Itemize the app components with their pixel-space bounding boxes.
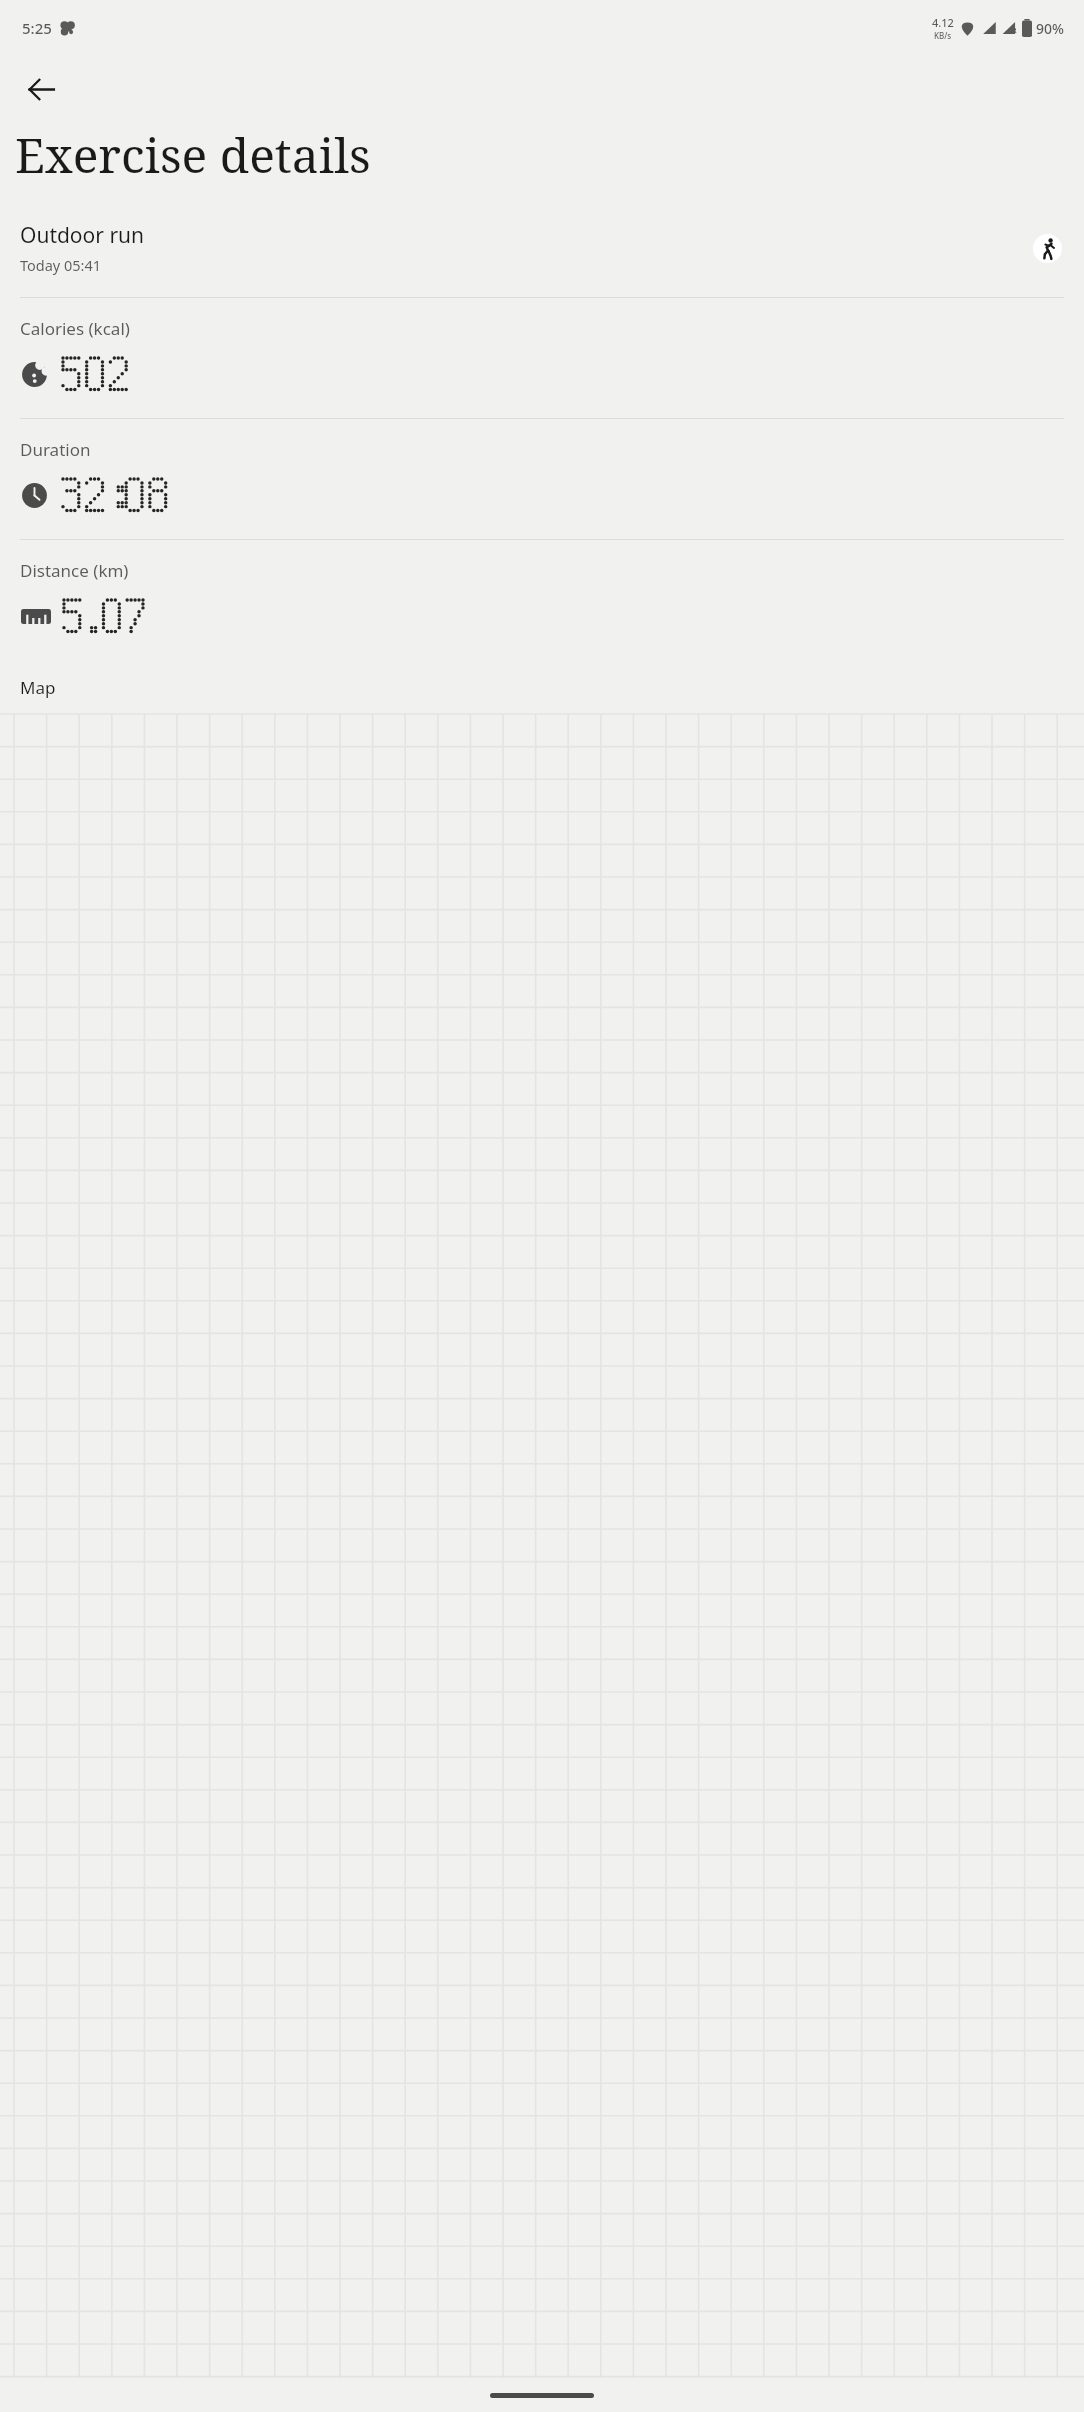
button[interactable]: Back — [14, 62, 68, 116]
staticText: Duration — [20, 438, 91, 461]
staticText: R — [1012, 26, 1017, 36]
other: Distance — [21, 603, 51, 630]
other: Calories — [21, 361, 48, 388]
button[interactable]: Map — [0, 714, 1084, 2378]
staticText: Calories (kcal) — [20, 317, 130, 340]
other: Duration — [21, 482, 48, 509]
staticText: KB/s — [934, 30, 952, 41]
staticText: 90% — [1036, 19, 1064, 38]
staticText: Map — [20, 676, 56, 699]
staticText: Exercise details — [15, 122, 371, 187]
button[interactable]: Outdoor run — [20, 221, 1062, 275]
staticText: 4.12 — [932, 15, 954, 30]
staticText: Distance (km) — [20, 559, 129, 582]
staticText: 5:25 — [22, 18, 52, 38]
staticText: Today 05:41 — [20, 255, 102, 275]
staticText: Outdoor run — [20, 221, 145, 250]
